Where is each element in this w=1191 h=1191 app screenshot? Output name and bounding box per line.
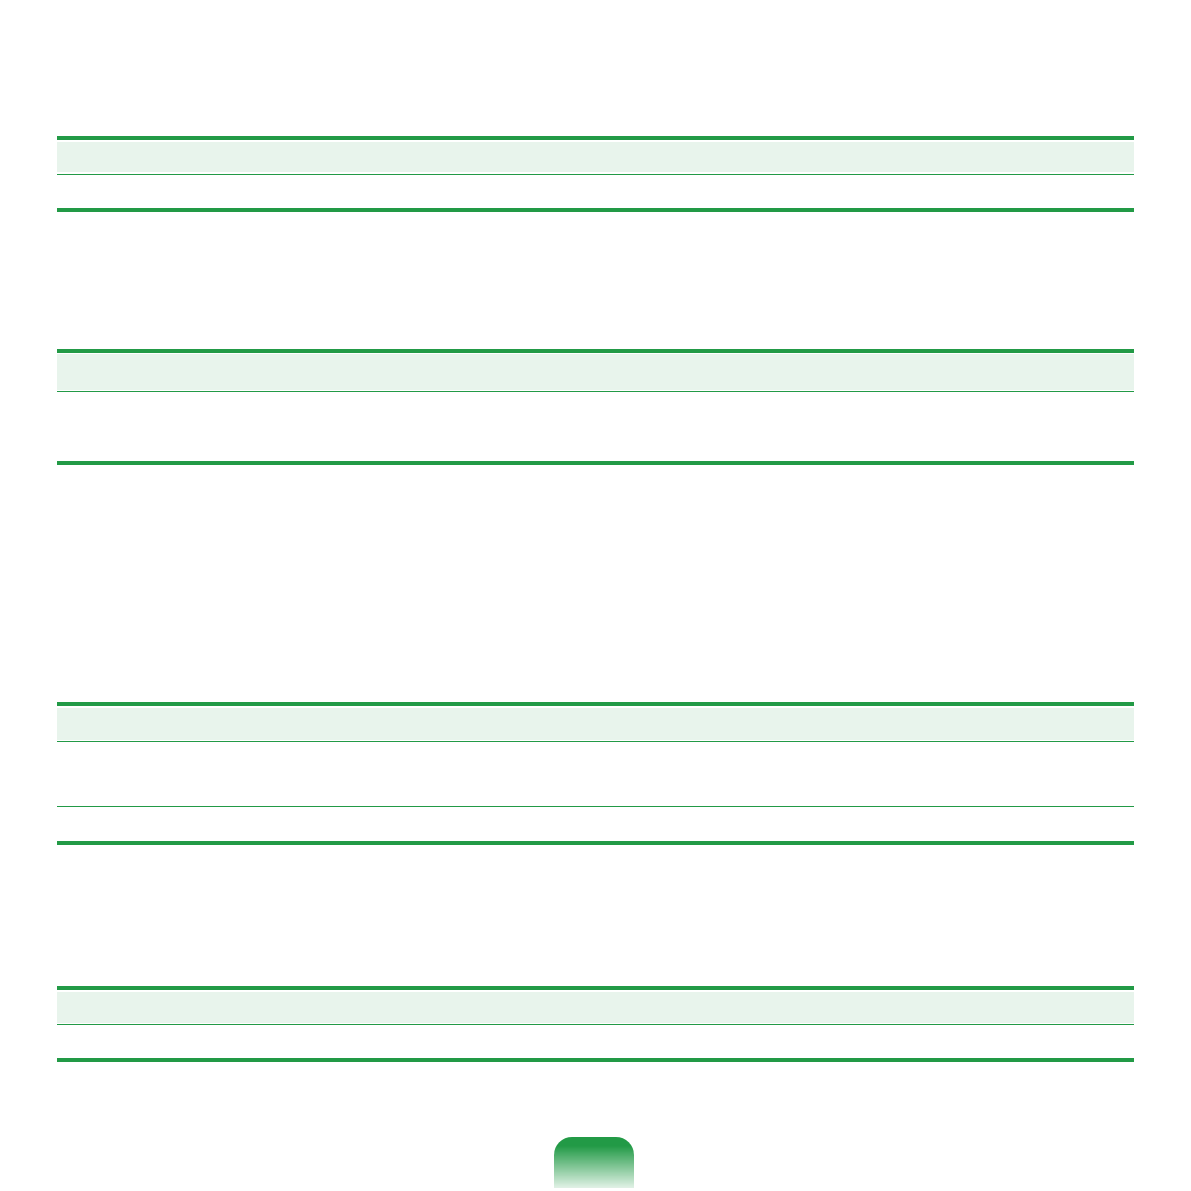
button[interactable]: Add to shopping list xyxy=(554,1137,634,1188)
